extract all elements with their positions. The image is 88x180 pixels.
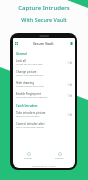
staticText: Enable Fingerprint [16,92,41,96]
staticText: Take intruders picture [16,111,46,115]
staticText: Change your existing picture [16,74,43,77]
staticText: With Secure Vault [21,16,67,23]
button[interactable]: Add item [70,42,73,45]
staticText: Hide drawing [16,81,34,85]
button[interactable]: Enable Fingerprint [13,90,75,101]
button[interactable]: Hide drawing [13,79,75,90]
staticText: Security [24,157,33,160]
button[interactable]: Toggle Lock all [67,61,72,64]
button[interactable]: Toggle Take intruders picture [67,113,72,116]
button[interactable]: Take intruders picture [13,109,75,120]
staticText: Click to see what we captured [16,126,44,129]
button[interactable]: Control intruder alert [13,120,75,131]
staticText: Catch Intruders [16,104,38,108]
staticText: Capture Intruders [18,4,70,12]
button[interactable]: Toggle Enable Fingerprint [67,94,72,97]
button[interactable]: Toggle Hide drawing [67,83,72,86]
staticText: Unlock apps with your fingerprint [16,96,48,99]
button[interactable]: Change picture [13,68,75,79]
staticText: Control intruder alert [16,122,45,126]
staticText: www.example.com - Android [32,165,56,167]
staticText: Change picture [16,70,37,74]
button[interactable]: Settings [44,149,75,163]
button[interactable]: Lock all [13,57,75,68]
staticText: General [16,52,27,56]
staticText: Settings [55,157,64,160]
staticText: Intruders pattern won't show [16,85,44,88]
button[interactable]: Menu [15,42,18,45]
staticText: Enable to catch intruders [16,115,40,118]
button[interactable]: Security [13,149,44,163]
staticText: You will lock all of your apps [16,63,43,66]
staticText: Secure Vault [33,41,54,46]
staticText: Lock all [16,59,26,63]
